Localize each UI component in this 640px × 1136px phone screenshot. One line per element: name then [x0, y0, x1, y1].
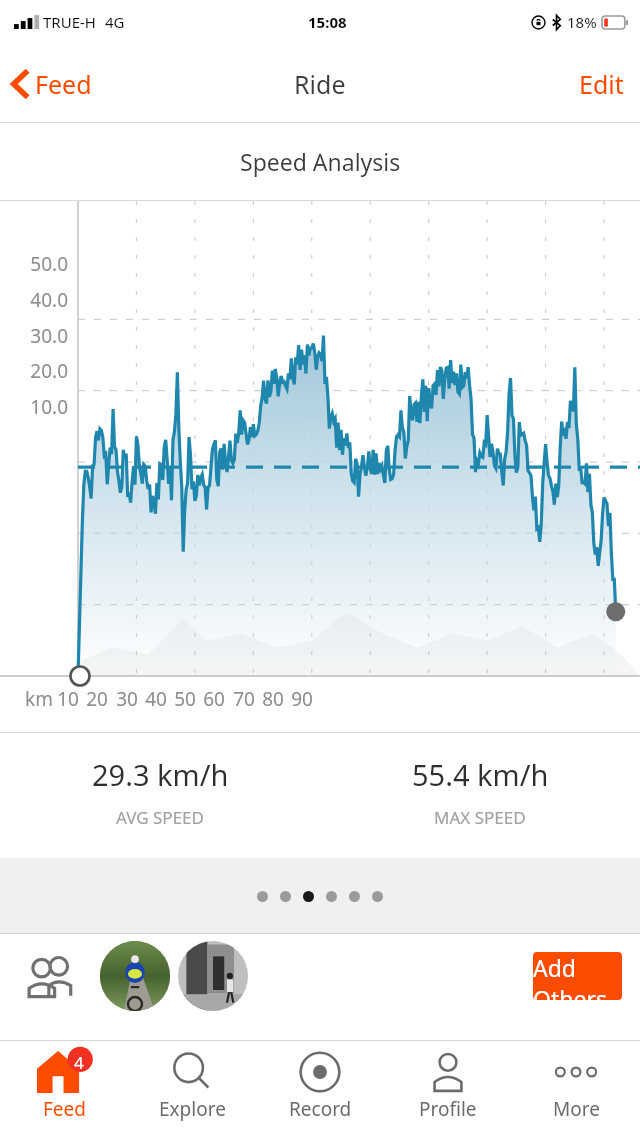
button[interactable]: Add Others [533, 952, 622, 1000]
staticText: 15:08 [308, 12, 347, 32]
staticText: Record [289, 1096, 352, 1122]
staticText: TRUE-H [43, 12, 96, 32]
button[interactable] [326, 891, 337, 902]
button[interactable]: 29.3 km/h [0, 733, 320, 858]
staticText: 4G [105, 12, 125, 32]
button[interactable]: 4 [0, 1040, 128, 1136]
other: Record [299, 1051, 341, 1093]
staticText: MAX SPEED [434, 806, 526, 829]
staticText: Profile [419, 1096, 477, 1122]
other: Profile [427, 1051, 469, 1093]
staticText: 40.0 [0, 287, 68, 313]
staticText: 50.0 [0, 251, 68, 277]
button[interactable]: Record [256, 1040, 384, 1136]
staticText: 70 [214, 686, 274, 712]
other: Participants [26, 954, 78, 998]
staticText: 80 [243, 686, 303, 712]
staticText: AVG SPEED [116, 806, 204, 829]
button[interactable] [372, 891, 383, 902]
staticText: 20 [67, 686, 127, 712]
button[interactable]: Profile [384, 1040, 512, 1136]
button[interactable] [303, 891, 314, 902]
staticText: Feed [35, 67, 92, 101]
button[interactable]: Athlete photo [178, 941, 248, 1011]
button[interactable]: Athlete photo [100, 941, 170, 1011]
button[interactable] [280, 891, 291, 902]
staticText: Add Others [533, 952, 622, 1000]
staticText: km [9, 686, 69, 712]
other: More [548, 1062, 604, 1082]
staticText: More [553, 1096, 600, 1122]
staticText: 40 [126, 686, 186, 712]
staticText: 10.0 [0, 394, 68, 420]
other: Explore [171, 1051, 213, 1093]
staticText: Speed Analysis [240, 146, 401, 177]
button[interactable] [257, 891, 268, 902]
staticText: Ride [294, 67, 346, 101]
staticText: 60 [184, 686, 244, 712]
button[interactable] [349, 891, 360, 902]
button[interactable]: 55.4 km/h [320, 733, 640, 858]
staticText: 90 [272, 686, 332, 712]
staticText: Explore [159, 1096, 226, 1122]
staticText: 10 [38, 686, 98, 712]
staticText: 50 [155, 686, 215, 712]
staticText: 18% [567, 12, 597, 32]
staticText: 29.3 km/h [92, 755, 229, 794]
staticText: 30.0 [0, 323, 68, 349]
staticText: 55.4 km/h [412, 755, 549, 794]
staticText: 30 [97, 686, 157, 712]
staticText: 20.0 [0, 358, 68, 384]
staticText: Feed [43, 1096, 86, 1122]
button[interactable]: Explore [128, 1040, 256, 1136]
button[interactable]: More [512, 1040, 640, 1136]
staticText: Edit [579, 67, 624, 101]
staticText: 4 [74, 1051, 84, 1074]
button[interactable]: Feed [0, 59, 102, 109]
button[interactable]: Edit [563, 57, 640, 111]
